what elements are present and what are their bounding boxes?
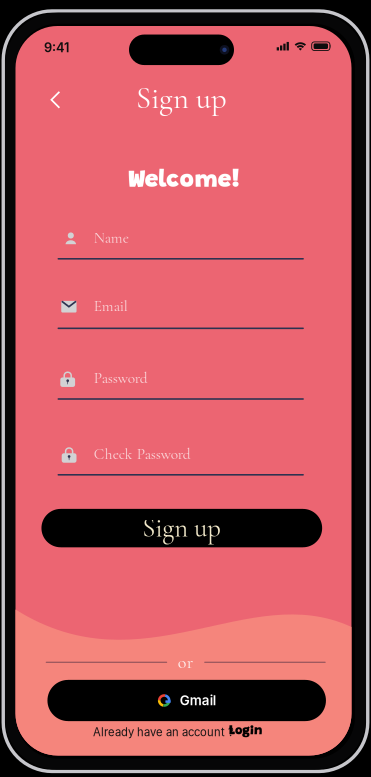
staticText: Sign up [136,80,227,117]
button[interactable]: Sign up [41,509,322,547]
staticText: Login [229,725,262,737]
button[interactable]: Back [39,83,72,116]
staticText: 9:41 [44,40,69,55]
button[interactable]: Login [226,723,266,739]
staticText: Already have an account ? [93,725,234,739]
staticText: Gmail [180,692,216,708]
staticText: Welcome! [128,168,240,193]
button[interactable]: Gmail [47,680,326,721]
staticText: Sign up [142,512,221,544]
staticText: Email [94,297,128,315]
staticText: Name [94,228,129,247]
staticText: or [178,651,194,673]
staticText: Password [94,369,148,387]
staticText: Check Password [94,445,191,463]
